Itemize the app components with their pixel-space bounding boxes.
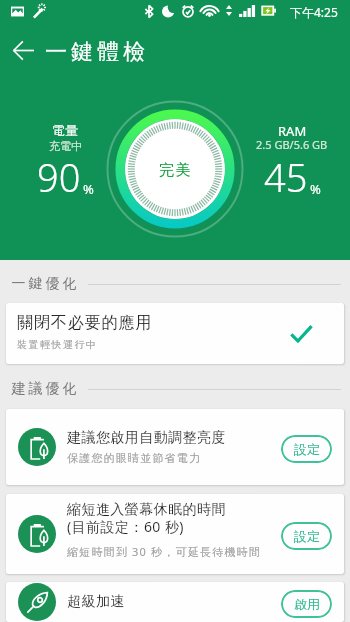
button[interactable]: 超級加速 [6,582,344,622]
staticText: % [83,180,94,198]
button[interactable]: 啟用 [281,590,332,618]
staticText: 建議優化 [10,380,78,398]
staticText: 超級加速 [67,593,125,611]
staticText: 保護您的眼睛並節省電力 [67,451,202,465]
staticText: % [310,180,321,198]
staticText: RAM [278,122,307,140]
staticText: 設定 [294,528,320,544]
staticText: 關閉不必要的應用 [17,313,153,333]
staticText: 下午4:25 [290,4,338,20]
button[interactable]: Back [6,33,40,67]
staticText: 縮短時間到 30 秒，可延長待機時間 [67,544,261,559]
button[interactable]: 關閉不必要的應用 [6,303,344,364]
staticText: 90 [37,151,81,203]
staticText: 充電中 [49,139,82,153]
button[interactable]: 設定 [281,435,332,463]
staticText: 啟用 [294,596,320,612]
staticText: 45 [264,151,308,203]
staticText: 縮短進入螢幕休眠的時間 (目前設定：60 秒) [67,501,226,536]
button[interactable]: 建議您啟用自動調整亮度 [6,409,344,485]
staticText: 設定 [294,441,320,457]
staticText: 一鍵優化 [10,275,78,293]
staticText: 電量 [52,122,78,138]
staticText: 一鍵體檢 [43,38,147,66]
button[interactable]: 縮短進入螢幕休眠的時間 (目前設定：60 秒) [6,494,344,574]
button[interactable]: 設定 [281,522,332,550]
staticText: 建議您啟用自動調整亮度 [67,429,226,447]
staticText: 完美 [159,161,192,180]
staticText: 2.5 GB/5.6 GB [256,137,328,152]
staticText: 裝置輕快運行中 [17,338,98,351]
